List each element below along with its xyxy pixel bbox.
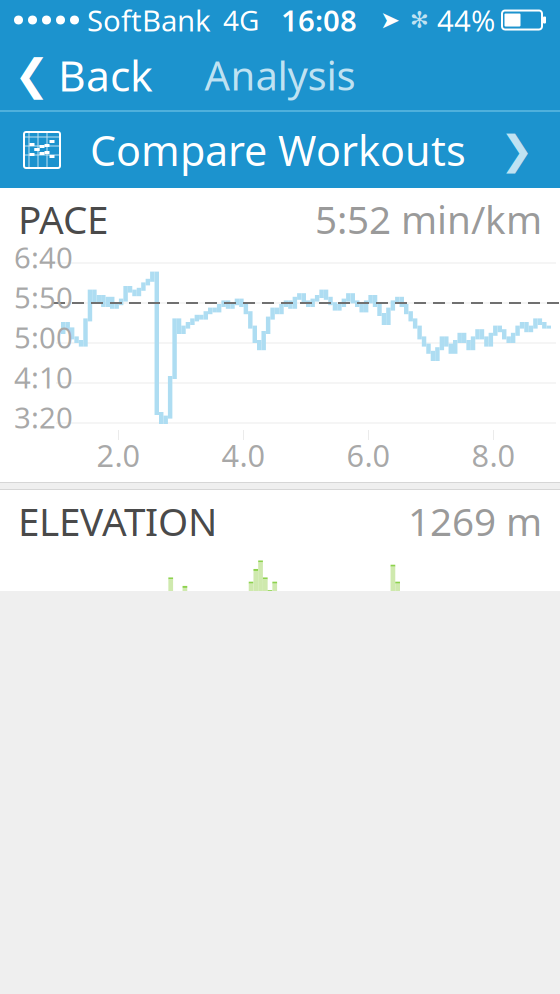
staticText: 3:20 xyxy=(14,397,73,436)
staticText: ELEVATION xyxy=(18,495,217,547)
staticText: ❯ xyxy=(500,127,534,173)
staticText: 5:50 xyxy=(14,277,73,316)
staticText: 5:00 xyxy=(14,317,73,356)
staticText: 40 xyxy=(20,581,54,620)
button[interactable]: ❮ xyxy=(0,39,167,111)
staticText: 4G xyxy=(223,1,259,39)
staticText: 6:40 xyxy=(14,237,73,276)
staticText: Analysis xyxy=(204,48,355,101)
staticText: Back xyxy=(58,47,153,103)
staticText: 5:52 min/km xyxy=(315,193,542,245)
staticText: 8.0 xyxy=(471,435,515,475)
staticText: 4:10 xyxy=(14,357,73,396)
staticText: 44% xyxy=(437,0,495,39)
staticText: 16:08 xyxy=(281,0,357,39)
staticText: 1269 m xyxy=(408,495,542,547)
staticText: 2.0 xyxy=(96,435,140,475)
button[interactable]: Compare Workouts xyxy=(0,110,560,188)
staticText: SoftBank xyxy=(87,0,211,39)
staticText: PACE xyxy=(18,193,108,245)
staticText: 6.0 xyxy=(346,435,390,475)
staticText: ➤ xyxy=(380,6,400,34)
staticText: Compare Workouts xyxy=(90,123,466,177)
staticText: ✻ xyxy=(410,7,429,33)
staticText: ❮ xyxy=(14,51,50,99)
staticText: 4.0 xyxy=(221,435,265,475)
